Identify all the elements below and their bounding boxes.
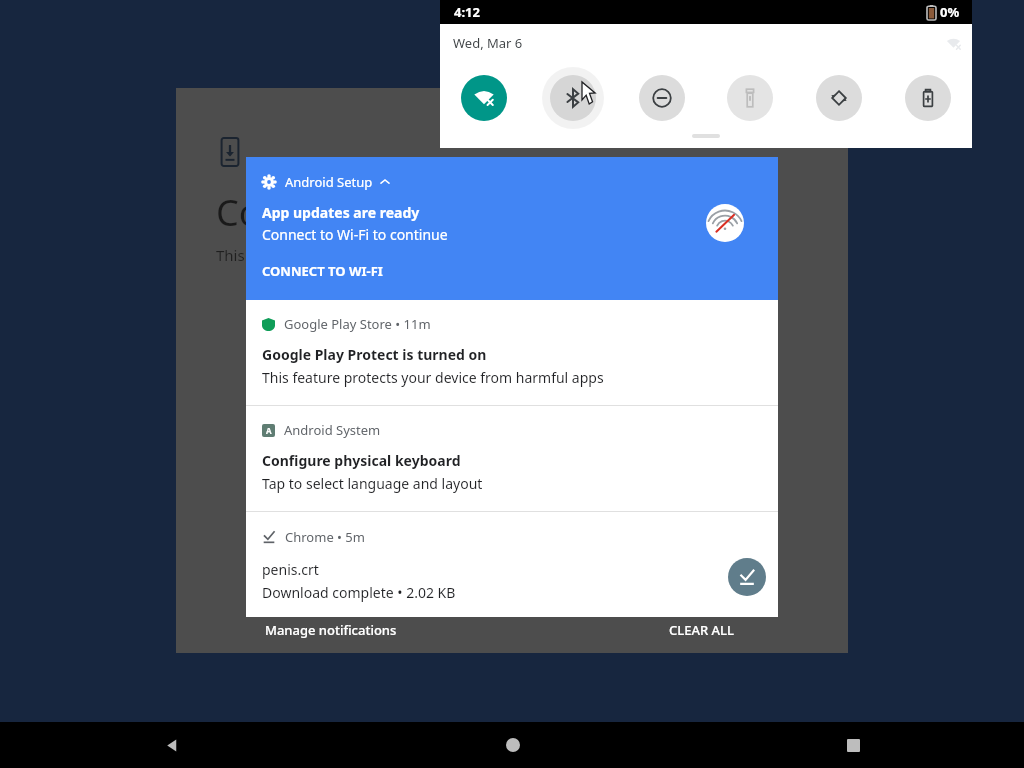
- staticText: Configure physical keyboard: [262, 451, 461, 470]
- staticText: 0%: [940, 3, 960, 21]
- button[interactable]: Battery saver: [896, 66, 960, 130]
- staticText: Tap to select language and layout: [262, 474, 483, 493]
- staticText: Google Play Store • 11m: [284, 315, 431, 333]
- staticText: Manage notifications: [265, 621, 397, 639]
- staticText: Co: [216, 188, 261, 237]
- button[interactable]: Do not disturb: [630, 66, 694, 130]
- button[interactable]: Back: [0, 722, 342, 768]
- staticText: Chrome • 5m: [285, 528, 365, 546]
- button[interactable]: A: [246, 406, 778, 511]
- other: Wi-Fi disconnected: [706, 204, 744, 242]
- staticText: CONNECT TO WI-FI: [262, 262, 383, 280]
- button[interactable]: Manage notifications: [261, 617, 401, 643]
- staticText: Android System: [284, 421, 381, 439]
- staticText: Download complete • 2.02 KB: [262, 583, 456, 602]
- staticText: This: [216, 245, 245, 265]
- button[interactable]: Android Setup: [246, 157, 778, 300]
- staticText: This feature protects your device from h…: [262, 368, 604, 387]
- button[interactable]: CLEAR ALL: [665, 617, 738, 643]
- staticText: CLEAR ALL: [669, 621, 734, 639]
- button[interactable]: Auto-rotate: [807, 66, 871, 130]
- button[interactable]: Open download: [728, 558, 766, 596]
- button[interactable]: Bluetooth: [541, 66, 605, 130]
- button[interactable]: CONNECT TO WI-FI: [262, 262, 383, 280]
- staticText: Android Setup: [285, 173, 373, 191]
- button[interactable]: Google Play Store • 11m: [246, 300, 778, 405]
- button[interactable]: Chrome • 5m: [246, 512, 778, 617]
- staticText: 4:12: [454, 3, 480, 21]
- staticText: Wed, Mar 6: [453, 34, 523, 52]
- staticText: Google Play Protect is turned on: [262, 345, 487, 364]
- staticText: App updates are ready: [262, 203, 420, 222]
- staticText: penis.crt: [262, 560, 319, 579]
- staticText: Connect to Wi-Fi to continue: [262, 225, 448, 244]
- button[interactable]: Wi-Fi status: [942, 32, 964, 54]
- button[interactable]: Flashlight: [718, 66, 782, 130]
- button[interactable]: Wi-Fi: [452, 66, 516, 130]
- button[interactable]: Recent apps: [683, 722, 1024, 768]
- button[interactable]: Home: [342, 722, 683, 768]
- staticText: A: [266, 425, 272, 436]
